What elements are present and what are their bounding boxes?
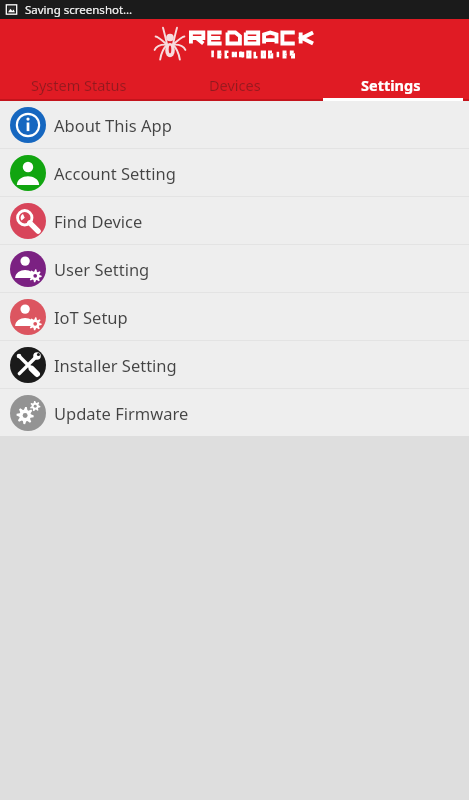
staticText: Devices <box>209 75 261 95</box>
button[interactable]: Installer Setting <box>0 341 469 388</box>
staticText: Settings <box>361 75 421 95</box>
button[interactable]: IoT Setup <box>0 293 469 340</box>
staticText: User Setting <box>54 258 150 280</box>
button[interactable]: System Status <box>0 68 157 101</box>
staticText: About This App <box>54 114 172 136</box>
button[interactable]: Find Device <box>0 197 469 244</box>
button[interactable]: Account Setting <box>0 149 469 196</box>
button[interactable]: User Setting <box>0 245 469 292</box>
staticText: Find Device <box>54 210 143 232</box>
staticText: Saving screenshot… <box>25 2 133 18</box>
button[interactable]: About This App <box>0 101 469 148</box>
staticText: System Status <box>31 75 127 95</box>
other: Screenshot <box>5 3 18 16</box>
button[interactable]: Devices <box>157 68 313 101</box>
staticText: Installer Setting <box>54 354 177 376</box>
staticText: IoT Setup <box>54 306 128 328</box>
staticText: Update Firmware <box>54 402 189 424</box>
staticText: Account Setting <box>54 162 176 184</box>
button[interactable]: Settings <box>313 68 469 101</box>
button[interactable]: Update Firmware <box>0 389 469 436</box>
